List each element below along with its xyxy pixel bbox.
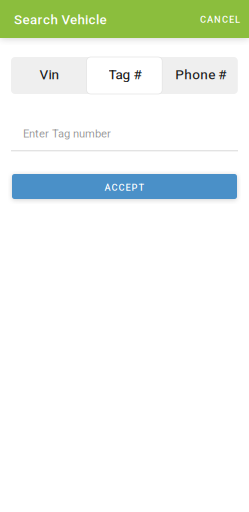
button[interactable]: Enter Tag number: [11, 125, 238, 155]
staticText: Tag #: [109, 66, 142, 82]
staticText: Phone #: [175, 66, 226, 82]
button[interactable]: Phone #: [162, 57, 238, 94]
staticText: Search Vehicle: [14, 12, 106, 28]
button[interactable]: CANCEL: [191, 6, 249, 33]
staticText: Enter Tag number: [23, 127, 111, 140]
staticText: CANCEL: [200, 14, 240, 25]
button[interactable]: Tag #: [87, 57, 162, 94]
button[interactable]: Vin: [11, 57, 87, 94]
staticText: Vin: [39, 66, 59, 82]
button[interactable]: ACCEPT: [12, 174, 237, 199]
staticText: ACCEPT: [104, 182, 144, 193]
